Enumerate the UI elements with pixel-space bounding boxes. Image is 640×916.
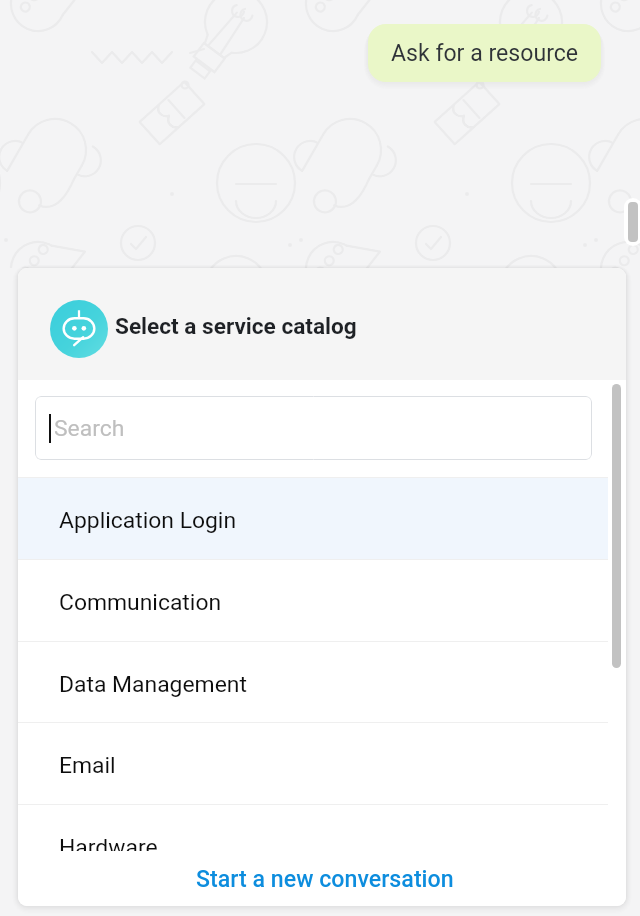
staticText: Data Management bbox=[59, 671, 247, 698]
staticText: Email bbox=[59, 752, 116, 779]
staticText: Hardware bbox=[59, 834, 158, 851]
staticText: Ask for a resource bbox=[391, 40, 579, 67]
staticText: Search bbox=[54, 415, 125, 442]
button[interactable]: Application Login bbox=[18, 477, 608, 559]
button[interactable]: Search catalog bbox=[35, 396, 592, 460]
button[interactable]: Ask for a resource bbox=[368, 24, 601, 82]
button[interactable]: Data Management bbox=[18, 641, 608, 723]
staticText: Application Login bbox=[59, 507, 237, 534]
button[interactable]: Hardware bbox=[18, 804, 608, 851]
button[interactable]: Email bbox=[18, 722, 608, 804]
other: Virtual agent avatar bbox=[50, 300, 108, 358]
staticText: Communication bbox=[59, 589, 222, 616]
staticText: Start a new conversation bbox=[196, 865, 454, 892]
staticText: Select a service catalog bbox=[115, 313, 357, 339]
button[interactable]: Communication bbox=[18, 559, 608, 641]
button[interactable]: Start a new conversation bbox=[186, 859, 464, 898]
